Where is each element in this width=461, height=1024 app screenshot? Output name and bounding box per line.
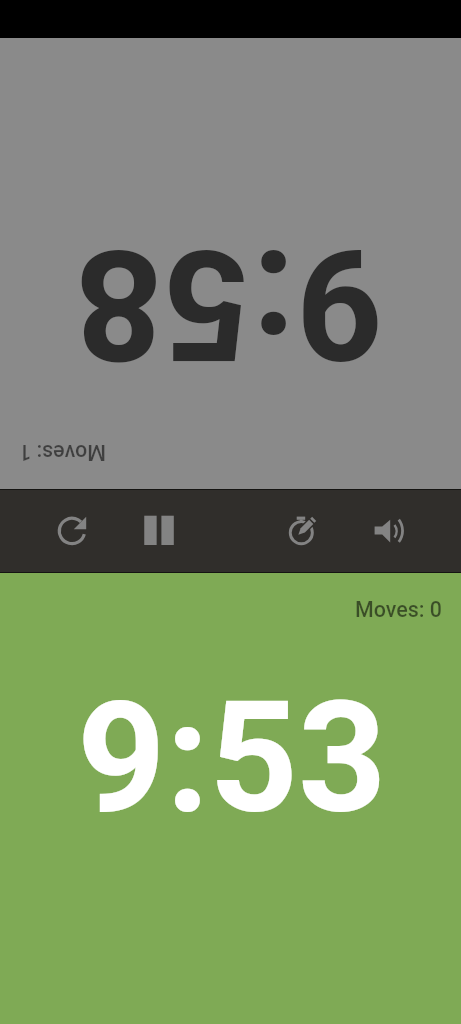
staticText: 9:58 (74, 213, 384, 394)
button[interactable]: Moves: 0 (0, 573, 461, 1024)
staticText: Moves: 1 (19, 440, 106, 465)
button[interactable]: Moves: 1 (0, 38, 461, 489)
button[interactable]: Restart (48, 507, 96, 555)
staticText: 9:53 (77, 668, 387, 849)
staticText: Moves: 0 (355, 597, 442, 622)
button[interactable]: Pause (135, 507, 183, 555)
button[interactable]: Edit time (278, 507, 326, 555)
button[interactable]: Sound (365, 507, 413, 555)
